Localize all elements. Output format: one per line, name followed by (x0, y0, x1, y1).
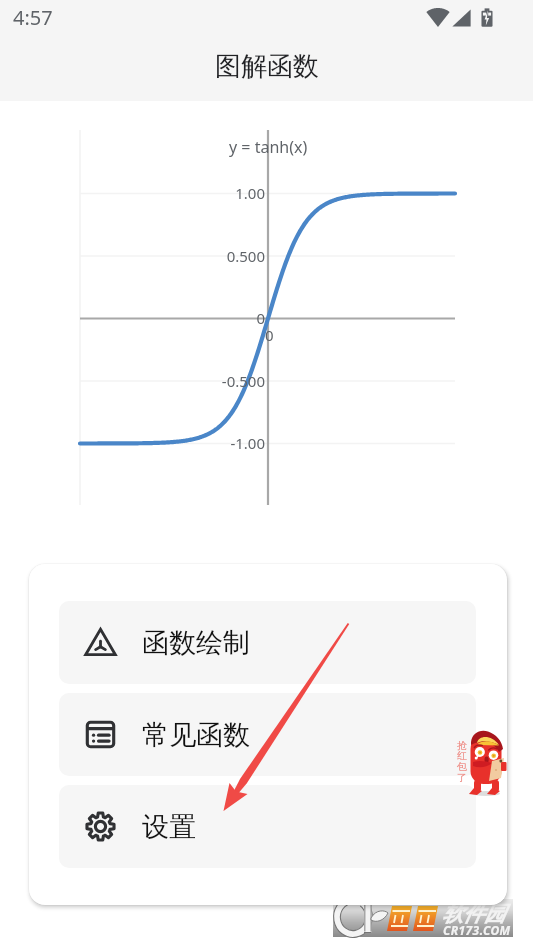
staticText: 函数绘制 (142, 626, 250, 660)
staticText: CR173.COM (443, 922, 511, 938)
staticText: 4:57 (13, 4, 53, 31)
button[interactable]: 常见函数 (59, 693, 476, 776)
staticText: 常见函数 (142, 718, 250, 752)
staticText: y = tanh(x) (229, 136, 308, 158)
button[interactable]: 设置 (59, 785, 476, 868)
staticText: 0.500 (175, 246, 265, 266)
staticText: 抢 红 包 了 (457, 739, 467, 784)
staticText: -1.00 (175, 433, 265, 453)
staticText: -0.500 (175, 371, 265, 391)
staticText: 1.00 (175, 183, 265, 203)
staticText: 0 (265, 325, 274, 345)
staticText: 软件园 (442, 901, 505, 927)
staticText: 0 (175, 308, 265, 328)
staticText: 设置 (142, 810, 196, 844)
button[interactable]: 函数绘制 (59, 601, 476, 684)
staticText: 图解函数 (215, 50, 319, 83)
